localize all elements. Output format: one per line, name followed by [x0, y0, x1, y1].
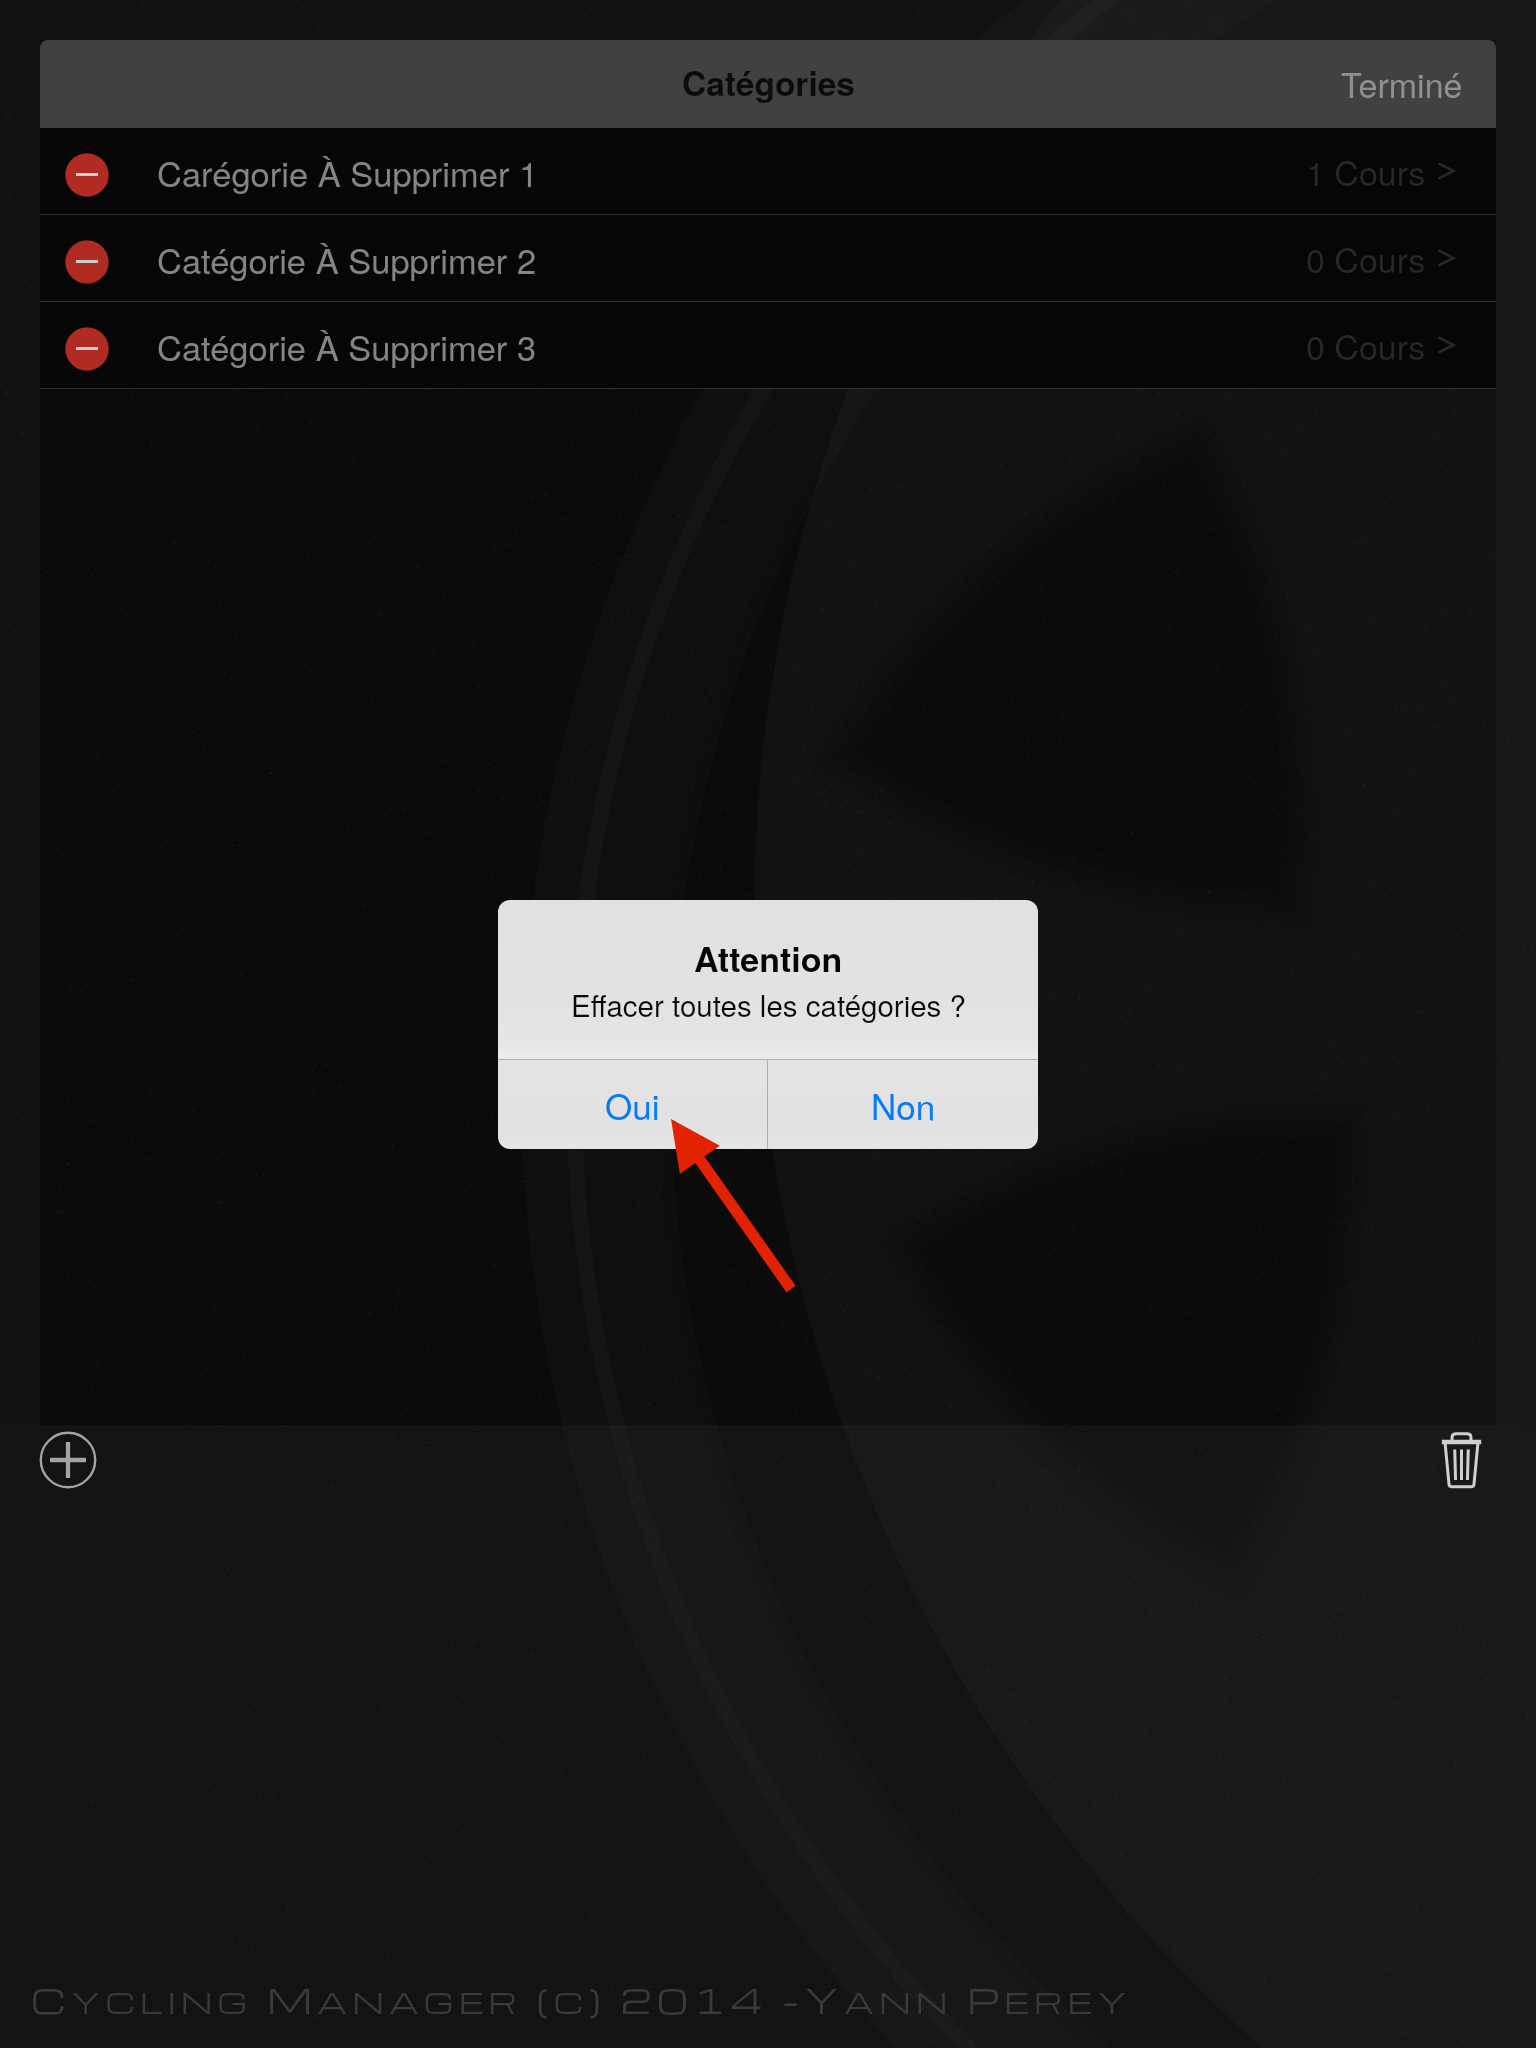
button[interactable]: Supprimer la catégorie — [40, 128, 1496, 215]
staticText: Catégories — [682, 58, 855, 106]
staticText: Catégorie À Supprimer 2 — [157, 234, 537, 283]
staticText: Non — [871, 1080, 936, 1130]
button[interactable]: Supprimer la catégorie — [40, 215, 1496, 302]
staticText: 0 Cours — [1306, 321, 1426, 370]
staticText: Oui — [605, 1080, 660, 1130]
staticText: Effacer toutes les catégories ? — [571, 983, 966, 1025]
button[interactable]: Terminé — [1301, 42, 1496, 127]
button[interactable]: Non — [768, 1060, 1038, 1149]
button[interactable]: Supprimer la catégorie — [40, 302, 1496, 389]
button[interactable]: Supprimer la catégorie — [64, 239, 110, 285]
button[interactable]: Supprimer toutes les catégories — [1421, 1420, 1501, 1500]
staticText: 0 Cours — [1306, 234, 1426, 283]
staticText: Carégorie À Supprimer 1 — [157, 147, 539, 196]
staticText: 1 Cours — [1306, 147, 1426, 196]
button[interactable]: Oui — [498, 1060, 767, 1149]
staticText: Terminé — [1341, 59, 1463, 108]
staticText: Catégorie À Supprimer 3 — [157, 321, 537, 370]
button[interactable]: Supprimer la catégorie — [64, 326, 110, 372]
button[interactable]: Supprimer la catégorie — [64, 152, 110, 198]
button[interactable]: Ajouter une catégorie — [28, 1420, 108, 1500]
staticText: CYCLING MANAGER (C) 2014 -YANN PEREY — [31, 1976, 1132, 2023]
staticText: Attention — [694, 934, 843, 983]
